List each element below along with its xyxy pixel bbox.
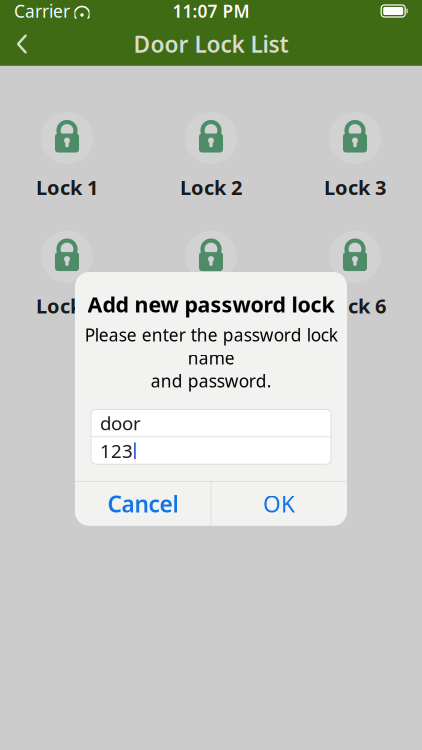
- staticText: door: [100, 410, 141, 435]
- button[interactable]: Lock 4: [7, 231, 127, 319]
- staticText: Lock 3: [324, 174, 386, 201]
- staticText: Lock 4: [36, 293, 98, 319]
- button[interactable]: Lock 3: [295, 112, 415, 201]
- staticText: Please enter the password lock name and …: [84, 323, 337, 392]
- button[interactable]: Back: [0, 22, 44, 66]
- staticText: Add new password lock: [87, 290, 334, 318]
- staticText: Lock 6: [324, 293, 386, 319]
- button[interactable]: Lock 1: [7, 112, 127, 201]
- staticText: 11:07 PM: [172, 0, 249, 22]
- button[interactable]: Lock 5: [151, 231, 271, 319]
- staticText: Door Lock List: [133, 29, 288, 59]
- staticText: Cancel: [107, 489, 178, 519]
- staticText: Lock 1: [36, 174, 98, 201]
- staticText: Lock 5: [180, 293, 242, 319]
- button[interactable]: Cancel: [75, 482, 211, 526]
- button[interactable]: Lock 2: [151, 112, 271, 201]
- staticText: Lock 2: [180, 174, 242, 201]
- button[interactable]: Lock 6: [295, 231, 415, 319]
- staticText: 123: [100, 438, 133, 463]
- staticText: OK: [263, 489, 295, 519]
- staticText: Carrier: [14, 0, 70, 22]
- button[interactable]: OK: [211, 482, 347, 526]
